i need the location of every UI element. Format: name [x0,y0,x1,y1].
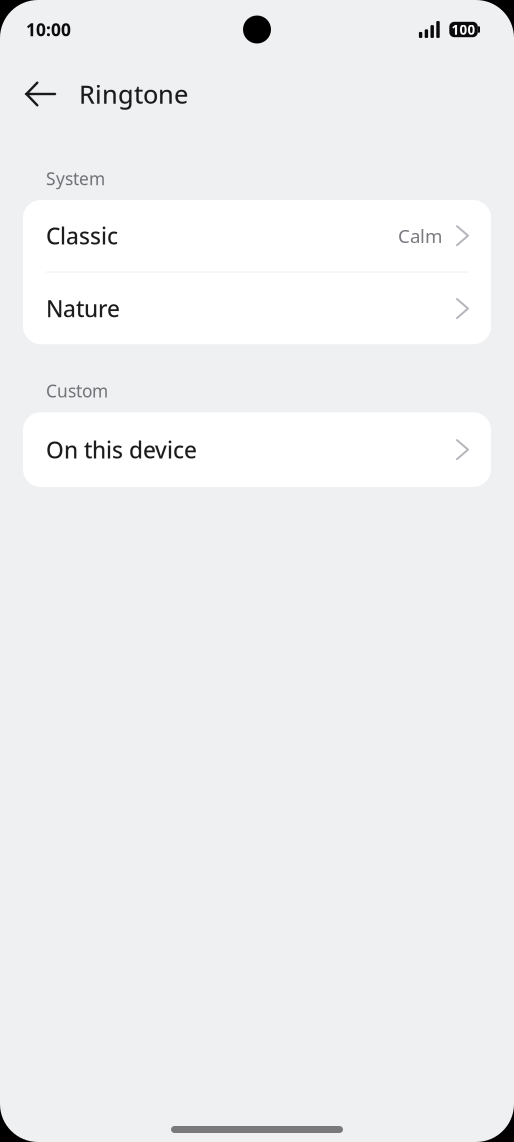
button[interactable]: Classic [23,200,491,271]
staticText: System [46,167,105,190]
staticText: Custom [46,379,108,402]
staticText: Classic [46,220,118,251]
staticText: Ringtone [79,77,188,111]
staticText: 100 [452,21,476,38]
staticText: 10:00 [26,18,71,41]
button[interactable]: On this device [23,412,491,487]
staticText: Nature [46,293,120,324]
button[interactable]: Back [14,69,67,119]
staticText: Calm [398,223,442,248]
button[interactable]: Nature [23,273,491,344]
staticText: On this device [46,434,197,465]
